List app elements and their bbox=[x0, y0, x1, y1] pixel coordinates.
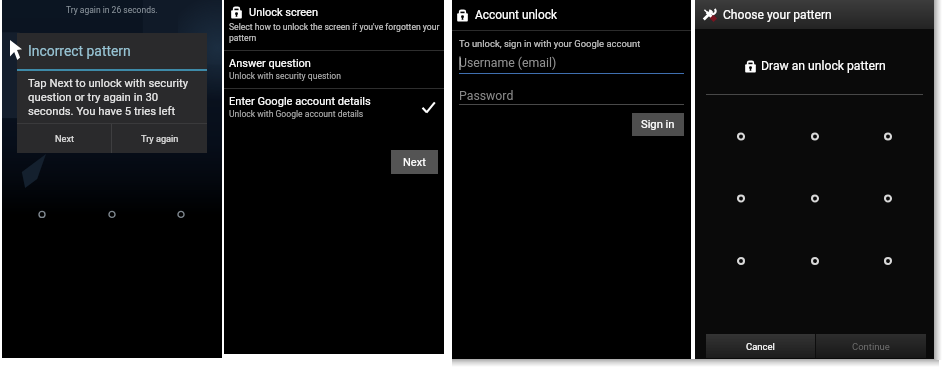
button[interactable]: Enter Google account details bbox=[224, 89, 444, 126]
staticText: Try again bbox=[141, 133, 179, 144]
staticText: Next bbox=[55, 133, 74, 144]
staticText: Select how to unlock the screen if you'v… bbox=[229, 22, 441, 43]
button[interactable]: Cancel bbox=[706, 334, 815, 358]
staticText: Account unlock bbox=[475, 8, 557, 22]
button[interactable]: Continue bbox=[816, 334, 926, 358]
staticText: Unlock with Google account details bbox=[229, 109, 364, 119]
staticText: Cancel bbox=[746, 341, 775, 352]
staticText: Incorrect pattern bbox=[28, 43, 131, 59]
button[interactable]: Try again bbox=[112, 124, 207, 153]
staticText: Username (email) bbox=[459, 56, 557, 70]
button[interactable]: Sign in bbox=[632, 113, 684, 136]
staticText: Next bbox=[403, 156, 426, 169]
button[interactable]: Next bbox=[17, 124, 111, 153]
button[interactable]: Next bbox=[391, 150, 438, 174]
staticText: Try again in 26 seconds. bbox=[66, 5, 158, 15]
staticText: Unlock with security question bbox=[229, 71, 341, 81]
button[interactable]: Answer question bbox=[224, 51, 444, 88]
staticText: Sign in bbox=[641, 118, 675, 131]
staticText: Answer question bbox=[229, 57, 311, 70]
staticText: Continue bbox=[852, 341, 890, 352]
staticText: Draw an unlock pattern bbox=[761, 59, 886, 73]
staticText: Password bbox=[459, 89, 514, 103]
staticText: Unlock screen bbox=[249, 6, 319, 19]
staticText: Tap Next to unlock with security questio… bbox=[28, 77, 200, 118]
staticText: To unlock, sign in with your Google acco… bbox=[459, 38, 641, 49]
staticText: Choose your pattern bbox=[723, 8, 832, 22]
staticText: Enter Google account details bbox=[229, 95, 371, 108]
